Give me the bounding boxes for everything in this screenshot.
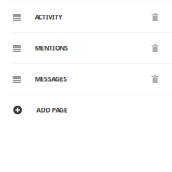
staticText: ACTIVITY: [35, 13, 62, 21]
button[interactable]: ACTIVITY: [0, 2, 172, 32]
button[interactable]: MENTIONS: [0, 33, 172, 63]
staticText: MESSAGES: [35, 75, 67, 83]
staticText: MENTIONS: [35, 44, 68, 52]
button[interactable]: MESSAGES: [0, 64, 172, 94]
button[interactable]: ADD PAGE: [0, 95, 172, 125]
staticText: ADD PAGE: [36, 106, 68, 114]
